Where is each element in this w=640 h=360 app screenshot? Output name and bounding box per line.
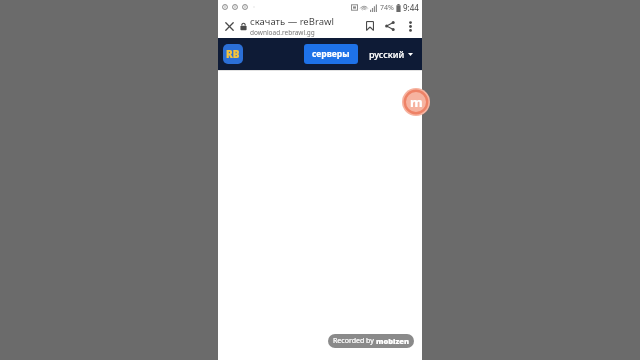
staticText: Recorded by xyxy=(333,336,376,346)
staticText: русский xyxy=(369,48,405,60)
staticText: скачать — reBrawl xyxy=(250,15,334,28)
button[interactable]: серверы xyxy=(304,44,358,64)
button[interactable]: Share xyxy=(380,16,400,36)
button[interactable]: Close xyxy=(218,15,240,37)
staticText: RB xyxy=(226,47,240,61)
staticText: 74% xyxy=(380,3,394,13)
staticText: m xyxy=(410,93,423,111)
staticText: mobizen xyxy=(376,336,409,346)
button[interactable]: reBrawl home xyxy=(223,44,243,64)
staticText: серверы xyxy=(312,48,350,60)
button[interactable]: русский xyxy=(366,44,416,64)
button[interactable]: More options xyxy=(400,16,420,36)
button[interactable]: скачать — reBrawl xyxy=(250,15,360,37)
staticText: 9:44 xyxy=(403,2,419,13)
button[interactable]: Bookmark xyxy=(360,16,380,36)
staticText: download.rebrawl.gg xyxy=(250,28,315,37)
